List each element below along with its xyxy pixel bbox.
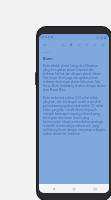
- staticText: Bumi terbentuk sekitar 4,54 miliar tahun…: [43, 96, 105, 136]
- button[interactable]: Back: [48, 184, 60, 193]
- button[interactable]: Recent apps: [89, 184, 101, 193]
- button[interactable]: Text size: [83, 41, 91, 49]
- button[interactable]: More options: [99, 41, 107, 49]
- button[interactable]: Home: [68, 184, 80, 193]
- staticText: Bumi adalah planet ketiga dari Matahari …: [43, 64, 105, 92]
- staticText: Bumi: [43, 56, 53, 61]
- staticText: Kamus: [43, 51, 51, 54]
- button[interactable]: Bookmark: [67, 41, 75, 49]
- button[interactable]: Search: [59, 41, 67, 49]
- button[interactable]: Back: [41, 41, 48, 48]
- button[interactable]: Share: [75, 41, 83, 49]
- button[interactable]: Edit: [91, 41, 99, 49]
